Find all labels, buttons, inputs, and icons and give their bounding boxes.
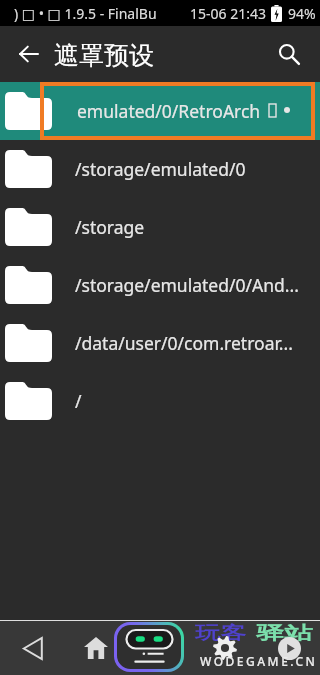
staticText: WODEGAME.CN bbox=[200, 653, 318, 669]
staticText: /storage bbox=[75, 215, 145, 239]
staticText: 遮罩预设 bbox=[54, 40, 154, 71]
button[interactable]: / bbox=[0, 372, 320, 430]
staticText: 驿站 bbox=[256, 622, 313, 645]
button[interactable]: Back bbox=[13, 628, 53, 668]
button[interactable]: AI assistant bbox=[114, 622, 184, 672]
button[interactable]: /storage/emulated/0/And... bbox=[0, 256, 320, 314]
staticText: 15-06 21:43 bbox=[190, 4, 266, 23]
staticText: /storage/emulated/0 bbox=[75, 157, 246, 181]
staticText: /data/user/0/com.retroar... bbox=[75, 331, 293, 355]
staticText: 玩客 bbox=[195, 622, 246, 645]
button[interactable]: emulated/0/RetroArch bbox=[0, 82, 320, 140]
button[interactable]: /storage/emulated/0 bbox=[0, 140, 320, 198]
staticText: /storage/emulated/0/And... bbox=[75, 273, 299, 297]
button[interactable]: Back bbox=[14, 39, 44, 69]
button[interactable]: /data/user/0/com.retroar... bbox=[0, 314, 320, 372]
staticText: emulated/0/RetroArch bbox=[77, 99, 261, 123]
button[interactable]: Home bbox=[76, 628, 116, 668]
staticText: ) □ • □ 1.9.5 - FinalBu bbox=[14, 4, 157, 23]
staticText: / bbox=[75, 389, 82, 413]
staticText: 94% bbox=[288, 4, 316, 23]
button[interactable]: /storage bbox=[0, 198, 320, 256]
button[interactable]: Search bbox=[272, 37, 306, 71]
